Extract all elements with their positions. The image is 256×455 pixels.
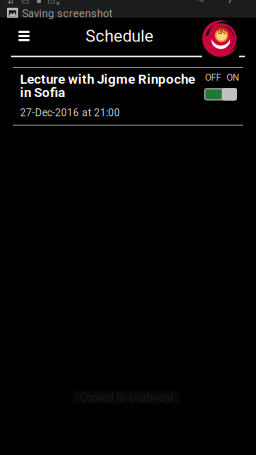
staticText: ⇵ [7,0,15,6]
staticText: in Sofia [20,85,65,100]
button[interactable]: Open navigation menu [5,17,42,55]
staticText: ▭ [21,0,30,6]
staticText: 100% [196,0,214,4]
staticText: 22:07 [227,0,251,6]
staticText: ༀ [217,21,226,51]
staticText: ▭ₓ [47,0,60,6]
staticText: Schedule [85,26,153,46]
staticText: Copied to clipboard [79,391,173,403]
button[interactable]: App logo [202,20,240,58]
staticText: ON [226,72,239,83]
staticText: OFF [205,72,221,83]
staticText: Saving screenshot [22,7,112,20]
staticText: ▪ [36,0,41,5]
button[interactable]: Lecture with Jigme Rinpoche [0,68,256,124]
staticText: Lecture with Jigme Rinpoche [20,71,195,87]
staticText: 27-Dec-2016 at 21:00 [20,107,120,119]
